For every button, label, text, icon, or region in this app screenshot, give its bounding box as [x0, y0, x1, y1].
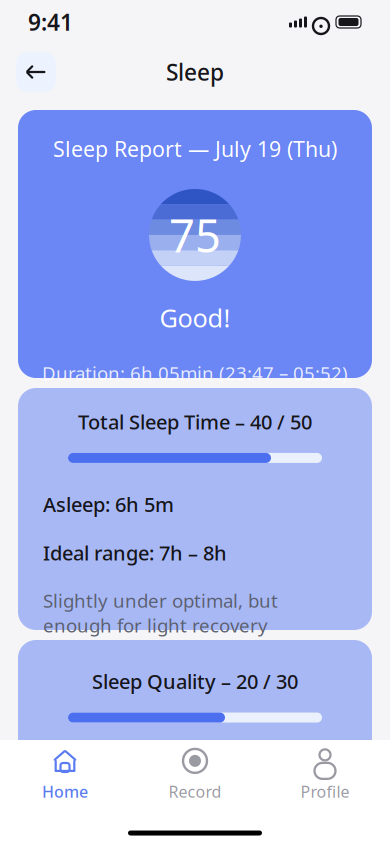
staticText: Sleep Report — July 19 (Thu) — [53, 135, 337, 163]
staticText: Sleep — [166, 57, 224, 87]
staticText: 9:41 — [28, 7, 73, 37]
staticText: Duration: 6h 05min (23:47 – 05:52) — [42, 361, 348, 385]
staticText: Profile — [300, 781, 349, 802]
button[interactable]: Record — [130, 738, 260, 812]
staticText: Sleep Quality – 20 / 30 — [92, 668, 298, 695]
button[interactable]: Home — [0, 738, 130, 812]
staticText: Asleep: 6h 5m — [43, 491, 174, 517]
staticText: Ideal range: 7h – 8h — [43, 539, 227, 566]
staticText: Record — [168, 781, 221, 802]
button[interactable]: Profile — [260, 738, 390, 812]
staticText: 75 — [169, 205, 221, 265]
staticText: Total Sleep Time – 40 / 50 — [78, 408, 312, 435]
button[interactable]: Back — [16, 52, 56, 92]
staticText: Home — [42, 781, 88, 802]
staticText: Slightly under optimal, but enough for l… — [43, 588, 278, 638]
staticText: Good! — [159, 301, 230, 334]
